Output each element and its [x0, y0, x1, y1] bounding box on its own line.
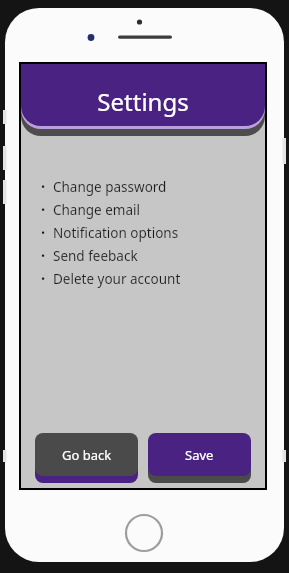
button[interactable]: Save [148, 433, 251, 483]
staticText: • [41, 271, 46, 286]
button[interactable]: • [41, 198, 265, 221]
staticText: • [41, 248, 46, 263]
staticText: Notification options [53, 224, 179, 242]
staticText: • [41, 225, 46, 240]
staticText: Save [185, 446, 214, 464]
button[interactable]: Settings [21, 64, 265, 126]
staticText: Settings [97, 85, 189, 118]
staticText: Go back [62, 446, 112, 464]
button[interactable]: • [41, 244, 265, 267]
staticText: Delete your account [53, 270, 181, 288]
button[interactable]: • [41, 221, 265, 244]
button[interactable]: Go back [35, 433, 138, 483]
staticText: Change password [53, 178, 167, 196]
button[interactable]: • [41, 267, 265, 290]
staticText: Send feeback [53, 247, 138, 265]
staticText: • [41, 202, 46, 217]
staticText: Change email [53, 201, 140, 219]
button[interactable]: • [41, 175, 265, 198]
staticText: • [41, 179, 46, 194]
